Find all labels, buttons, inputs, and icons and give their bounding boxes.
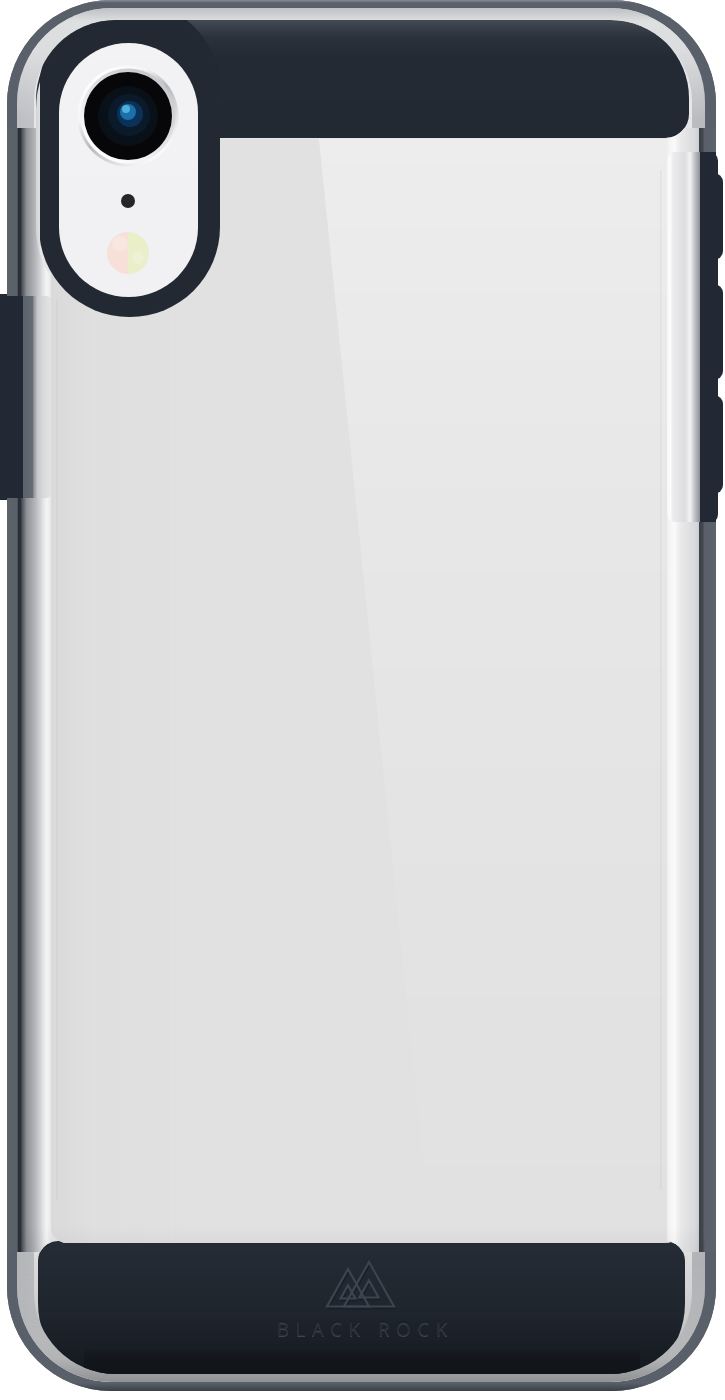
- button[interactable]: Black Rock Air Robust phone case, back v…: [0, 0, 725, 1400]
- button[interactable]: Power button: [701, 152, 725, 523]
- button[interactable]: Volume button: [0, 294, 24, 500]
